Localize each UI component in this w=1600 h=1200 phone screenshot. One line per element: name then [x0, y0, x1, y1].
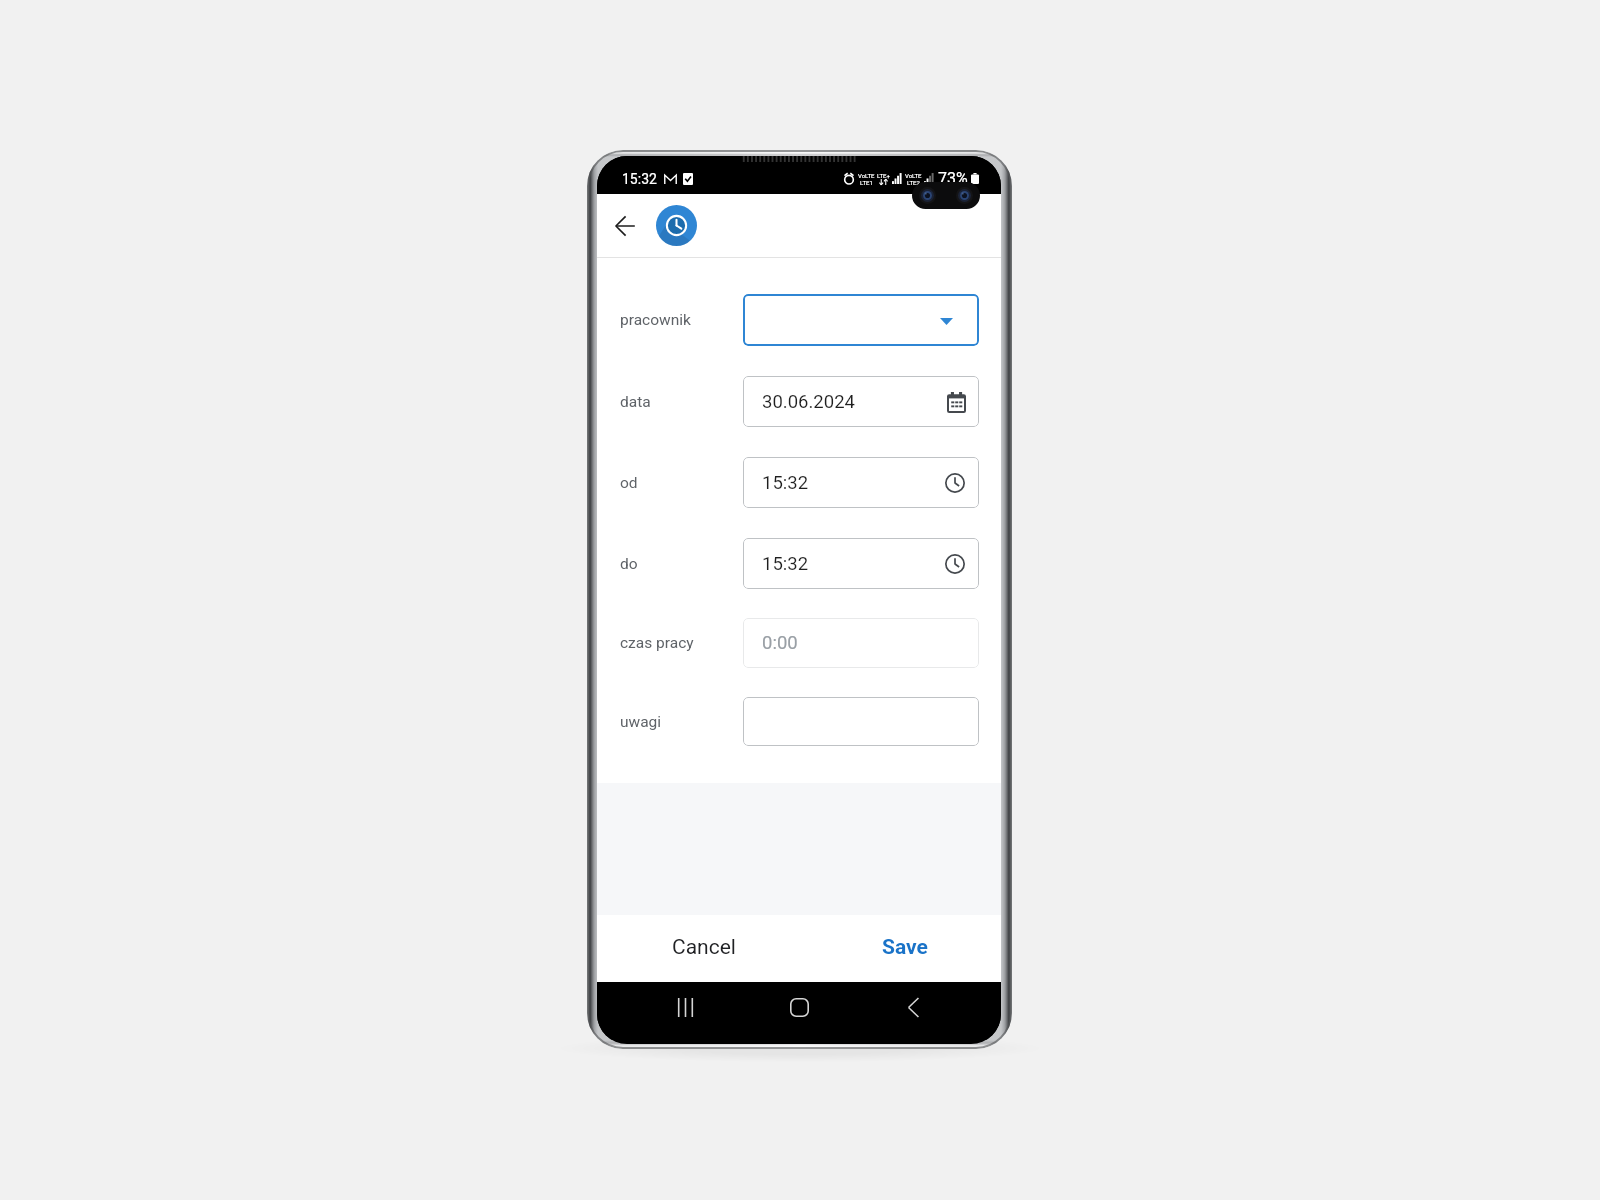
staticText: 15:32 — [762, 472, 809, 494]
staticText: 30.06.2024 — [762, 391, 855, 413]
button[interactable]: Clock — [656, 205, 697, 246]
staticText: LTE2 — [907, 179, 920, 186]
staticText: uwagi — [620, 713, 743, 731]
staticText: LTE+ — [877, 172, 890, 179]
staticText: 0:00 — [762, 632, 798, 654]
button[interactable]: pracownik — [743, 294, 979, 346]
staticText: LTE1 — [860, 179, 873, 186]
button[interactable]: data — [743, 376, 979, 427]
staticText: pracownik — [620, 311, 743, 329]
staticText: 73% — [938, 169, 968, 188]
button[interactable]: czas pracy — [743, 618, 979, 668]
button[interactable]: uwagi — [743, 697, 979, 746]
button[interactable]: Cancel — [605, 915, 803, 979]
staticText: VoLTE — [905, 172, 922, 179]
staticText: Save — [882, 935, 928, 960]
button[interactable]: Save — [803, 915, 1001, 979]
button[interactable]: Back — [889, 983, 937, 1031]
button[interactable]: Back — [604, 205, 645, 246]
staticText: od — [620, 474, 743, 492]
button[interactable]: do — [743, 538, 979, 589]
staticText: Cancel — [672, 935, 736, 960]
staticText: data — [620, 393, 743, 411]
staticText: 15:32 — [622, 171, 657, 187]
staticText: VoLTE — [858, 172, 875, 179]
button[interactable]: od — [743, 457, 979, 508]
staticText: 15:32 — [762, 553, 809, 575]
staticText: do — [620, 555, 743, 573]
button[interactable]: Home — [775, 983, 823, 1031]
button[interactable]: Recent apps — [661, 983, 709, 1031]
staticText: czas pracy — [620, 634, 743, 652]
